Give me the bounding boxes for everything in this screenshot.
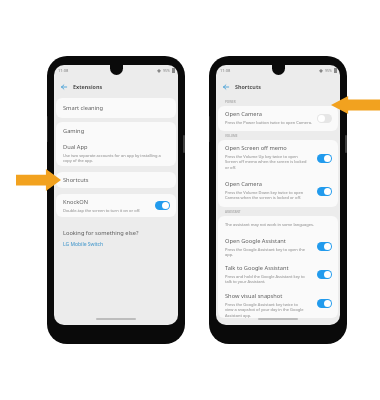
button[interactable]: Toggle off: [317, 114, 332, 123]
button[interactable]: Back: [223, 84, 229, 90]
staticText: Double-tap the screen to turn it on or o…: [63, 208, 141, 213]
staticText: The assistant may not work in some langu…: [225, 222, 315, 227]
button[interactable]: Show visual snapshot: [218, 288, 338, 318]
staticText: Smart cleaning: [63, 104, 104, 112]
button[interactable]: Shortcuts: [56, 172, 176, 188]
staticText: Press and hold the Google Assistant key …: [225, 274, 305, 284]
staticText: Extensions: [73, 83, 103, 90]
staticText: Gaming: [63, 127, 85, 135]
staticText: Open Camera: [225, 110, 262, 118]
staticText: 11:08: [220, 68, 231, 73]
other: Pointer to Shortcuts: [16, 169, 61, 191]
staticText: Press the Google Assistant key twice to …: [225, 302, 304, 318]
button[interactable]: Open Google Assistant: [218, 233, 338, 260]
staticText: 95%: [325, 68, 332, 73]
staticText: Dual App: [63, 143, 88, 151]
button[interactable]: KnockON: [56, 194, 176, 217]
staticText: Press the Volume Up key twice to open Sc…: [225, 154, 307, 170]
button[interactable]: Toggle on: [317, 270, 332, 279]
staticText: Shortcuts: [235, 83, 261, 90]
button[interactable]: Toggle on: [317, 187, 332, 196]
staticText: Open Screen off memo: [225, 144, 287, 152]
staticText: Press the Google Assistant key to open t…: [225, 247, 305, 257]
staticText: 95%: [163, 68, 170, 73]
button[interactable]: Toggle on: [317, 299, 332, 308]
button[interactable]: Toggle on: [155, 201, 170, 210]
button[interactable]: Open Camera: [218, 106, 338, 131]
staticText: Press the Volume Down key twice to open …: [225, 190, 304, 200]
button[interactable]: Toggle on: [317, 242, 332, 251]
staticText: Open Google Assistant: [225, 237, 286, 245]
staticText: Show visual snapshot: [225, 292, 283, 300]
staticText: Looking for something else?: [63, 229, 139, 237]
staticText: ASSISTANT: [225, 210, 241, 214]
staticText: Shortcuts: [63, 176, 89, 184]
button[interactable]: Dual App: [56, 139, 176, 166]
button[interactable]: Smart cleaning: [56, 98, 176, 118]
button[interactable]: Toggle on: [317, 154, 332, 163]
other: Pointer to Open Camera: [331, 96, 380, 114]
staticText: 11:08: [58, 68, 69, 73]
staticText: Talk to Google Assistant: [225, 264, 289, 272]
staticText: POWER: [225, 100, 236, 104]
staticText: KnockON: [63, 198, 89, 206]
button[interactable]: Talk to Google Assistant: [218, 260, 338, 288]
staticText: VOLUME: [225, 134, 238, 138]
button[interactable]: Open Camera: [218, 176, 338, 207]
button[interactable]: Back: [61, 84, 67, 90]
staticText: Press the Power button twice to open Cam…: [225, 120, 312, 125]
staticText: LG Mobile Switch: [63, 241, 104, 248]
staticText: Open Camera: [225, 180, 262, 188]
staticText: Use two separate accounts for an app by …: [63, 153, 161, 163]
button[interactable]: Gaming: [56, 122, 176, 139]
button[interactable]: Open Screen off memo: [218, 140, 338, 176]
